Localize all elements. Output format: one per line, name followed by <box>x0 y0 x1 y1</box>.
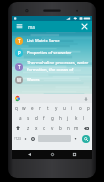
button[interactable]: Menu <box>15 22 24 31</box>
button[interactable]: t <box>44 103 52 113</box>
button[interactable]: a <box>16 113 24 123</box>
staticText: u <box>63 105 66 111</box>
button[interactable]: Period <box>72 133 79 144</box>
button[interactable]: s <box>24 113 32 123</box>
button[interactable]: Shift <box>12 123 24 133</box>
button[interactable]: v <box>48 123 56 133</box>
staticText: T <box>18 38 21 44</box>
staticText: i <box>71 105 73 111</box>
staticText: t <box>47 105 49 111</box>
button[interactable]: c <box>40 123 48 133</box>
staticText: n <box>67 125 70 131</box>
button[interactable]: Backspace <box>80 123 92 133</box>
button[interactable]: Search <box>82 135 90 143</box>
staticText: w <box>22 105 26 111</box>
button[interactable]: ?123 <box>12 133 22 144</box>
staticText: p <box>87 105 90 111</box>
button[interactable]: i <box>68 103 76 113</box>
button[interactable]: T <box>12 35 92 47</box>
staticText: k <box>75 115 78 121</box>
button[interactable]: y <box>52 103 60 113</box>
button[interactable]: k <box>72 113 80 123</box>
staticText: W <box>17 77 22 83</box>
staticText: ?123 <box>14 137 21 141</box>
staticText: v <box>51 125 54 131</box>
button[interactable]: Back <box>25 150 34 159</box>
staticText: s <box>27 115 30 121</box>
staticText: x <box>35 125 38 131</box>
staticText: ma <box>28 24 35 30</box>
button[interactable]: z <box>24 123 32 133</box>
button[interactable]: T <box>12 59 92 74</box>
button[interactable]: o <box>76 103 84 113</box>
button[interactable]: g <box>48 113 56 123</box>
staticText: g <box>51 115 54 121</box>
staticText: T <box>18 64 21 70</box>
button[interactable]: Home <box>48 150 57 159</box>
staticText: a <box>19 115 22 121</box>
button[interactable]: p <box>84 103 92 113</box>
staticText: y <box>55 105 58 111</box>
staticText: z <box>27 125 30 131</box>
button[interactable]: e <box>28 103 36 113</box>
staticText: o <box>79 105 82 111</box>
button[interactable]: P <box>12 47 92 59</box>
staticText: j <box>67 115 69 121</box>
button[interactable]: Clear search <box>80 22 89 31</box>
staticText: m <box>74 125 79 131</box>
button[interactable]: q <box>12 103 20 113</box>
button[interactable]: b <box>56 123 64 133</box>
staticText: e <box>31 105 34 111</box>
staticText: l <box>83 115 85 121</box>
staticText: q <box>15 105 18 111</box>
button[interactable]: x <box>32 123 40 133</box>
staticText: f <box>43 115 45 121</box>
staticText: d <box>35 115 38 121</box>
staticText: List Matrix Same <box>27 38 60 44</box>
button[interactable]: m <box>72 123 80 133</box>
button[interactable]: Recent apps <box>70 150 79 159</box>
button[interactable]: Emoji <box>29 133 37 144</box>
staticText: Thermohaline processes, water mass <box>27 60 90 66</box>
button[interactable]: j <box>64 113 72 123</box>
staticText: P <box>18 50 21 56</box>
staticText: b <box>59 125 62 131</box>
button[interactable]: n <box>64 123 72 133</box>
staticText: Properties of seawater <box>27 50 72 56</box>
button[interactable]: l <box>80 113 88 123</box>
button[interactable]: Voice input <box>12 94 92 103</box>
staticText: Waves <box>27 77 40 83</box>
button[interactable]: Voice input <box>82 95 89 102</box>
button[interactable]: h <box>56 113 64 123</box>
staticText: h <box>59 115 62 121</box>
staticText: r <box>39 105 41 111</box>
button[interactable]: f <box>40 113 48 123</box>
staticText: formation, the ocean of thermohaline <box>27 67 90 73</box>
button[interactable]: w <box>20 103 28 113</box>
button[interactable]: d <box>32 113 40 123</box>
button[interactable]: W <box>12 74 92 86</box>
button[interactable]: r <box>36 103 44 113</box>
staticText: c <box>43 125 46 131</box>
button[interactable]: Comma <box>22 133 29 144</box>
button[interactable]: u <box>60 103 68 113</box>
